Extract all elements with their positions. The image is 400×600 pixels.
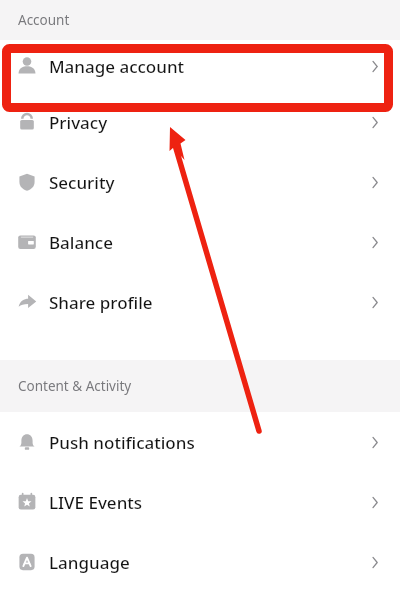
staticText: LIVE Events bbox=[49, 491, 143, 514]
staticText: Account bbox=[18, 11, 70, 29]
button[interactable]: Push notifications bbox=[0, 412, 400, 472]
staticText: Security bbox=[49, 171, 115, 194]
staticText: Language bbox=[49, 551, 130, 574]
staticText: Content & Activity bbox=[18, 377, 132, 395]
staticText: Manage account bbox=[49, 55, 185, 78]
staticText: Privacy bbox=[49, 111, 108, 134]
button[interactable]: Security bbox=[0, 152, 400, 212]
button[interactable]: Manage account bbox=[0, 40, 400, 92]
button[interactable]: Language bbox=[0, 532, 400, 592]
button[interactable]: Share profile bbox=[0, 272, 400, 332]
staticText: Share profile bbox=[49, 291, 153, 314]
staticText: Balance bbox=[49, 231, 113, 254]
button[interactable]: Privacy bbox=[0, 92, 400, 152]
staticText: Push notifications bbox=[49, 431, 195, 454]
button[interactable]: Balance bbox=[0, 212, 400, 272]
button[interactable]: LIVE Events bbox=[0, 472, 400, 532]
